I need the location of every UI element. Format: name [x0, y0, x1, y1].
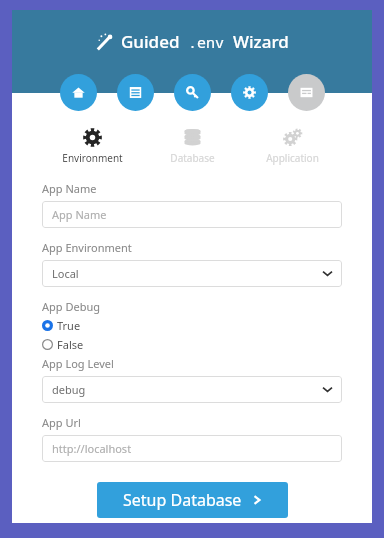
button[interactable]: Summary [288, 74, 325, 111]
staticText: .env [188, 32, 225, 52]
staticText: App Name [52, 207, 107, 222]
button[interactable]: Key [174, 74, 211, 111]
button[interactable]: Home [60, 74, 97, 111]
staticText: App Debug [42, 299, 100, 314]
staticText: App Environment [42, 240, 132, 255]
staticText: debug [52, 382, 86, 397]
staticText: True [57, 318, 81, 333]
button[interactable]: Setup Database [97, 482, 288, 518]
button[interactable]: False [42, 335, 84, 354]
staticText: Environment [62, 151, 123, 165]
staticText: False [57, 337, 84, 352]
button[interactable]: http://localhost [42, 435, 342, 462]
button[interactable]: Application [242, 128, 342, 165]
button[interactable]: List [117, 74, 154, 111]
button[interactable]: Settings [231, 74, 268, 111]
staticText: Local [52, 266, 79, 281]
staticText: App Name [42, 181, 97, 196]
button[interactable]: App Name [42, 201, 342, 228]
staticText: Guided [121, 30, 180, 53]
staticText: App Url [42, 415, 81, 430]
staticText: http://localhost [52, 441, 132, 456]
staticText: Application [266, 151, 319, 165]
staticText: Setup Database [123, 489, 242, 511]
button[interactable]: Database [142, 128, 242, 165]
button[interactable]: Local [42, 260, 342, 287]
staticText: Database [170, 151, 215, 165]
button[interactable]: True [42, 316, 81, 335]
button[interactable]: debug [42, 376, 342, 403]
staticText: Wizard [233, 30, 289, 53]
staticText: App Log Level [42, 356, 114, 371]
button[interactable]: Environment [42, 128, 142, 165]
